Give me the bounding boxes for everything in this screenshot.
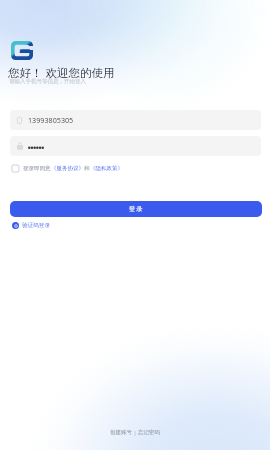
staticText: 和 (84, 165, 90, 172)
staticText: 您好！ 欢迎您的使用 (8, 65, 115, 81)
staticText: 《隐私政策》 (90, 165, 123, 172)
staticText: 登 录 (129, 205, 143, 213)
staticText: 《服务协议》 (51, 165, 84, 172)
button[interactable]: 忘记密码 (138, 429, 160, 436)
button[interactable] (10, 136, 261, 156)
button[interactable]: 登 录 (10, 201, 262, 217)
staticText: 请输入手机号等信息，开始登入 (9, 78, 86, 85)
staticText: 验证码登录 (22, 222, 50, 229)
button[interactable]: 创建账号 (110, 429, 132, 436)
button[interactable]: 13993805305 (10, 110, 261, 130)
staticText: | (132, 429, 138, 436)
button[interactable]: 验证码登录 (12, 222, 50, 229)
staticText: 13993805305 (28, 115, 74, 125)
staticText: 登录即同意 (23, 165, 51, 172)
button[interactable]: 登录即同意 (12, 165, 123, 172)
